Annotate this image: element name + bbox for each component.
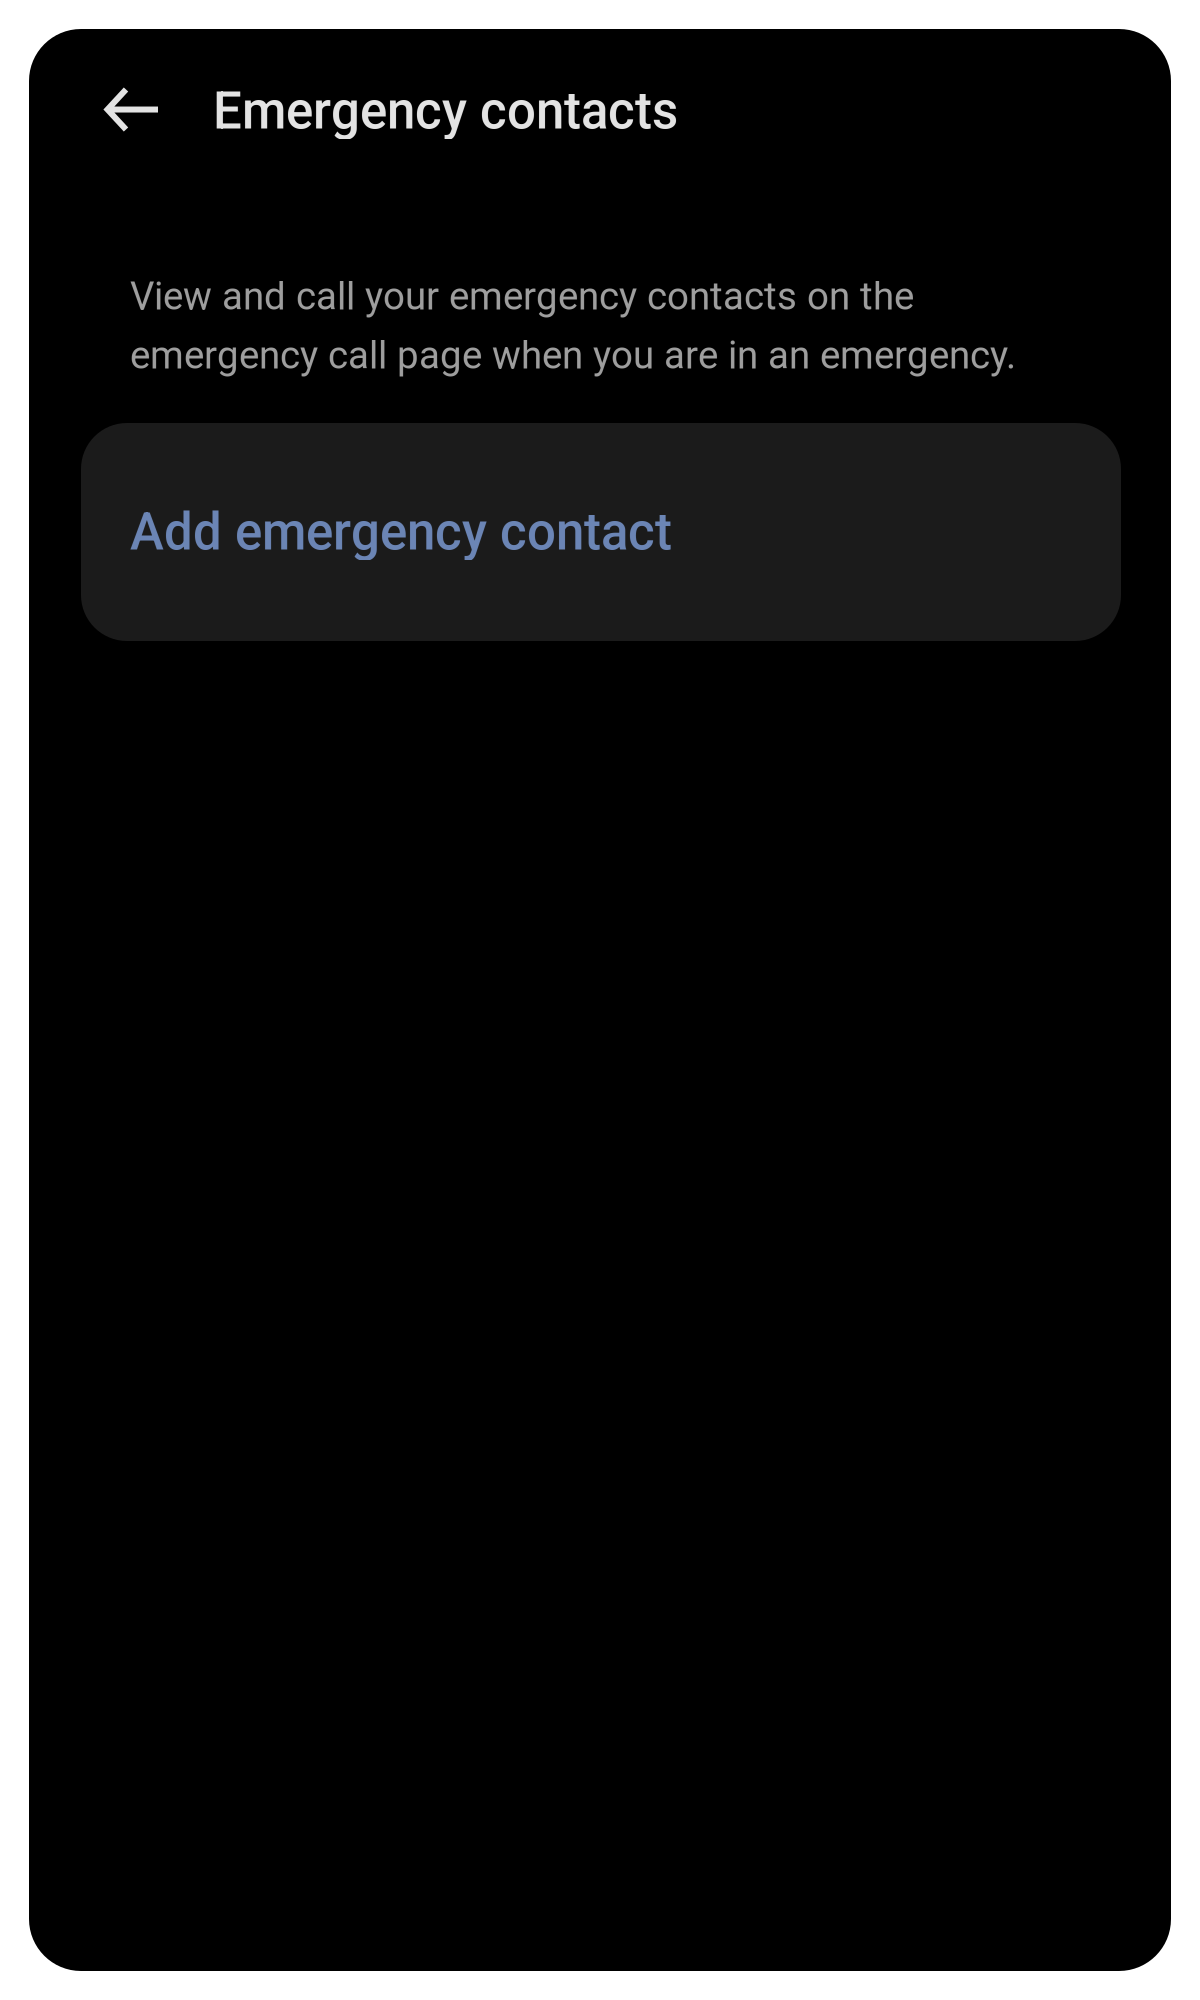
button[interactable]: Back <box>82 63 178 159</box>
staticText: View and call your emergency contacts on… <box>130 274 1016 378</box>
staticText: Emergency contacts <box>213 81 678 141</box>
staticText: Add emergency contact <box>130 502 672 562</box>
button[interactable]: Add emergency contact <box>81 423 1121 641</box>
